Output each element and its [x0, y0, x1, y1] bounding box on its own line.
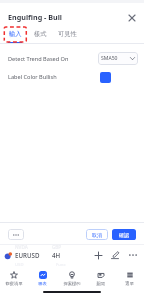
button[interactable]: Detect Trend Based On [8, 51, 144, 67]
button[interactable]: 輸入 [8, 27, 22, 43]
staticText: Engulfing - Bull [8, 12, 62, 22]
staticText: 取消 [92, 232, 102, 238]
button[interactable]: 樣式 [33, 27, 47, 43]
staticText: NVDA [15, 244, 28, 250]
button[interactable]: EURUSD [15, 249, 40, 261]
staticText: 可見性 [58, 30, 77, 38]
button[interactable]: 取消 [86, 229, 108, 240]
button[interactable]: More chart options [127, 249, 139, 261]
button[interactable]: Label colour [100, 72, 111, 83]
button[interactable]: 圖表 [28, 268, 57, 286]
staticText: SMA50 [101, 55, 118, 62]
staticText: 輸入 [9, 30, 22, 38]
button[interactable]: 探索標的 [57, 268, 86, 286]
staticText: 圖表 [38, 281, 47, 286]
staticText: 4H [52, 251, 61, 259]
staticText: 樣式 [34, 30, 47, 38]
button[interactable]: 4H [52, 249, 61, 261]
staticText: Func [56, 262, 66, 268]
button[interactable]: 確認 [112, 229, 136, 240]
staticText: Detect Trend Based On [8, 55, 69, 63]
button[interactable]: More options [8, 229, 24, 240]
staticText: EURUSD [15, 251, 40, 259]
button[interactable]: SMA50 [98, 52, 138, 65]
button[interactable]: Close [124, 10, 139, 25]
staticText: 探索標的 [63, 281, 81, 286]
button[interactable]: 選單 [115, 268, 144, 286]
button[interactable]: Add indicator [92, 249, 104, 261]
staticText: GBP [52, 244, 62, 250]
button[interactable]: 觀察清單 [0, 268, 28, 286]
button[interactable]: Symbol [5, 252, 12, 259]
staticText: 新聞 [96, 281, 105, 286]
button[interactable]: 可見性 [57, 27, 77, 43]
button[interactable]: Label Color Bullish [8, 69, 144, 85]
staticText: USD [15, 262, 24, 268]
button[interactable]: 新聞 [86, 268, 115, 286]
staticText: Label Color Bullish [8, 73, 57, 81]
staticText: 觀察清單 [5, 281, 23, 286]
button[interactable]: Drawing tools [109, 249, 121, 261]
staticText: 選單 [125, 281, 134, 286]
staticText: 確認 [119, 232, 129, 238]
